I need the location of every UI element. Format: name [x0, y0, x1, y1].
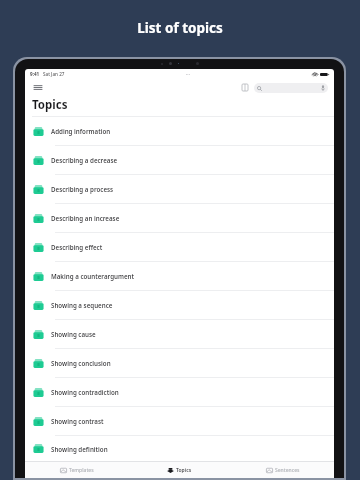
button[interactable] — [254, 83, 328, 93]
button[interactable]: Describing a decrease — [25, 146, 334, 174]
button[interactable]: Showing contrast — [25, 407, 334, 435]
staticText: Showing conclusion — [51, 359, 111, 367]
staticText: Describing a process — [51, 185, 114, 193]
staticText: Topics — [176, 467, 192, 474]
button[interactable]: Topics — [128, 462, 231, 478]
staticText: Templates — [69, 467, 94, 474]
button[interactable]: Making a counterargument — [25, 262, 334, 290]
staticText: Describing a decrease — [51, 156, 118, 164]
button[interactable]: Adding information — [25, 117, 334, 145]
staticText: ··· — [186, 71, 191, 78]
button[interactable]: Showing conclusion — [25, 349, 334, 377]
staticText: Topics — [32, 97, 68, 113]
staticText: Showing cause — [51, 330, 96, 338]
button[interactable]: Showing definition — [25, 436, 334, 461]
button[interactable]: Describing a process — [25, 175, 334, 203]
button[interactable]: Describing an increase — [25, 204, 334, 232]
button[interactable]: Menu — [31, 81, 45, 95]
button[interactable]: Showing cause — [25, 320, 334, 348]
staticText: Showing contradiction — [51, 388, 119, 396]
staticText: Showing contrast — [51, 417, 104, 425]
button[interactable]: Sentences — [231, 462, 334, 478]
staticText: Sat Jan 27 — [43, 71, 65, 77]
staticText: Showing definition — [51, 445, 108, 453]
button[interactable]: Templates — [25, 462, 128, 478]
staticText: Showing a sequence — [51, 301, 113, 309]
button[interactable]: Describing effect — [25, 233, 334, 261]
staticText: Sentences — [275, 467, 300, 474]
staticText: List of topics — [137, 19, 223, 37]
button[interactable]: Reader — [238, 81, 251, 94]
staticText: 9:41 — [30, 71, 40, 77]
button[interactable]: Showing contradiction — [25, 378, 334, 406]
button[interactable]: Showing a sequence — [25, 291, 334, 319]
staticText: Describing an increase — [51, 214, 120, 222]
staticText: Making a counterargument — [51, 272, 135, 280]
staticText: Adding information — [51, 127, 111, 135]
staticText: Describing effect — [51, 243, 103, 251]
